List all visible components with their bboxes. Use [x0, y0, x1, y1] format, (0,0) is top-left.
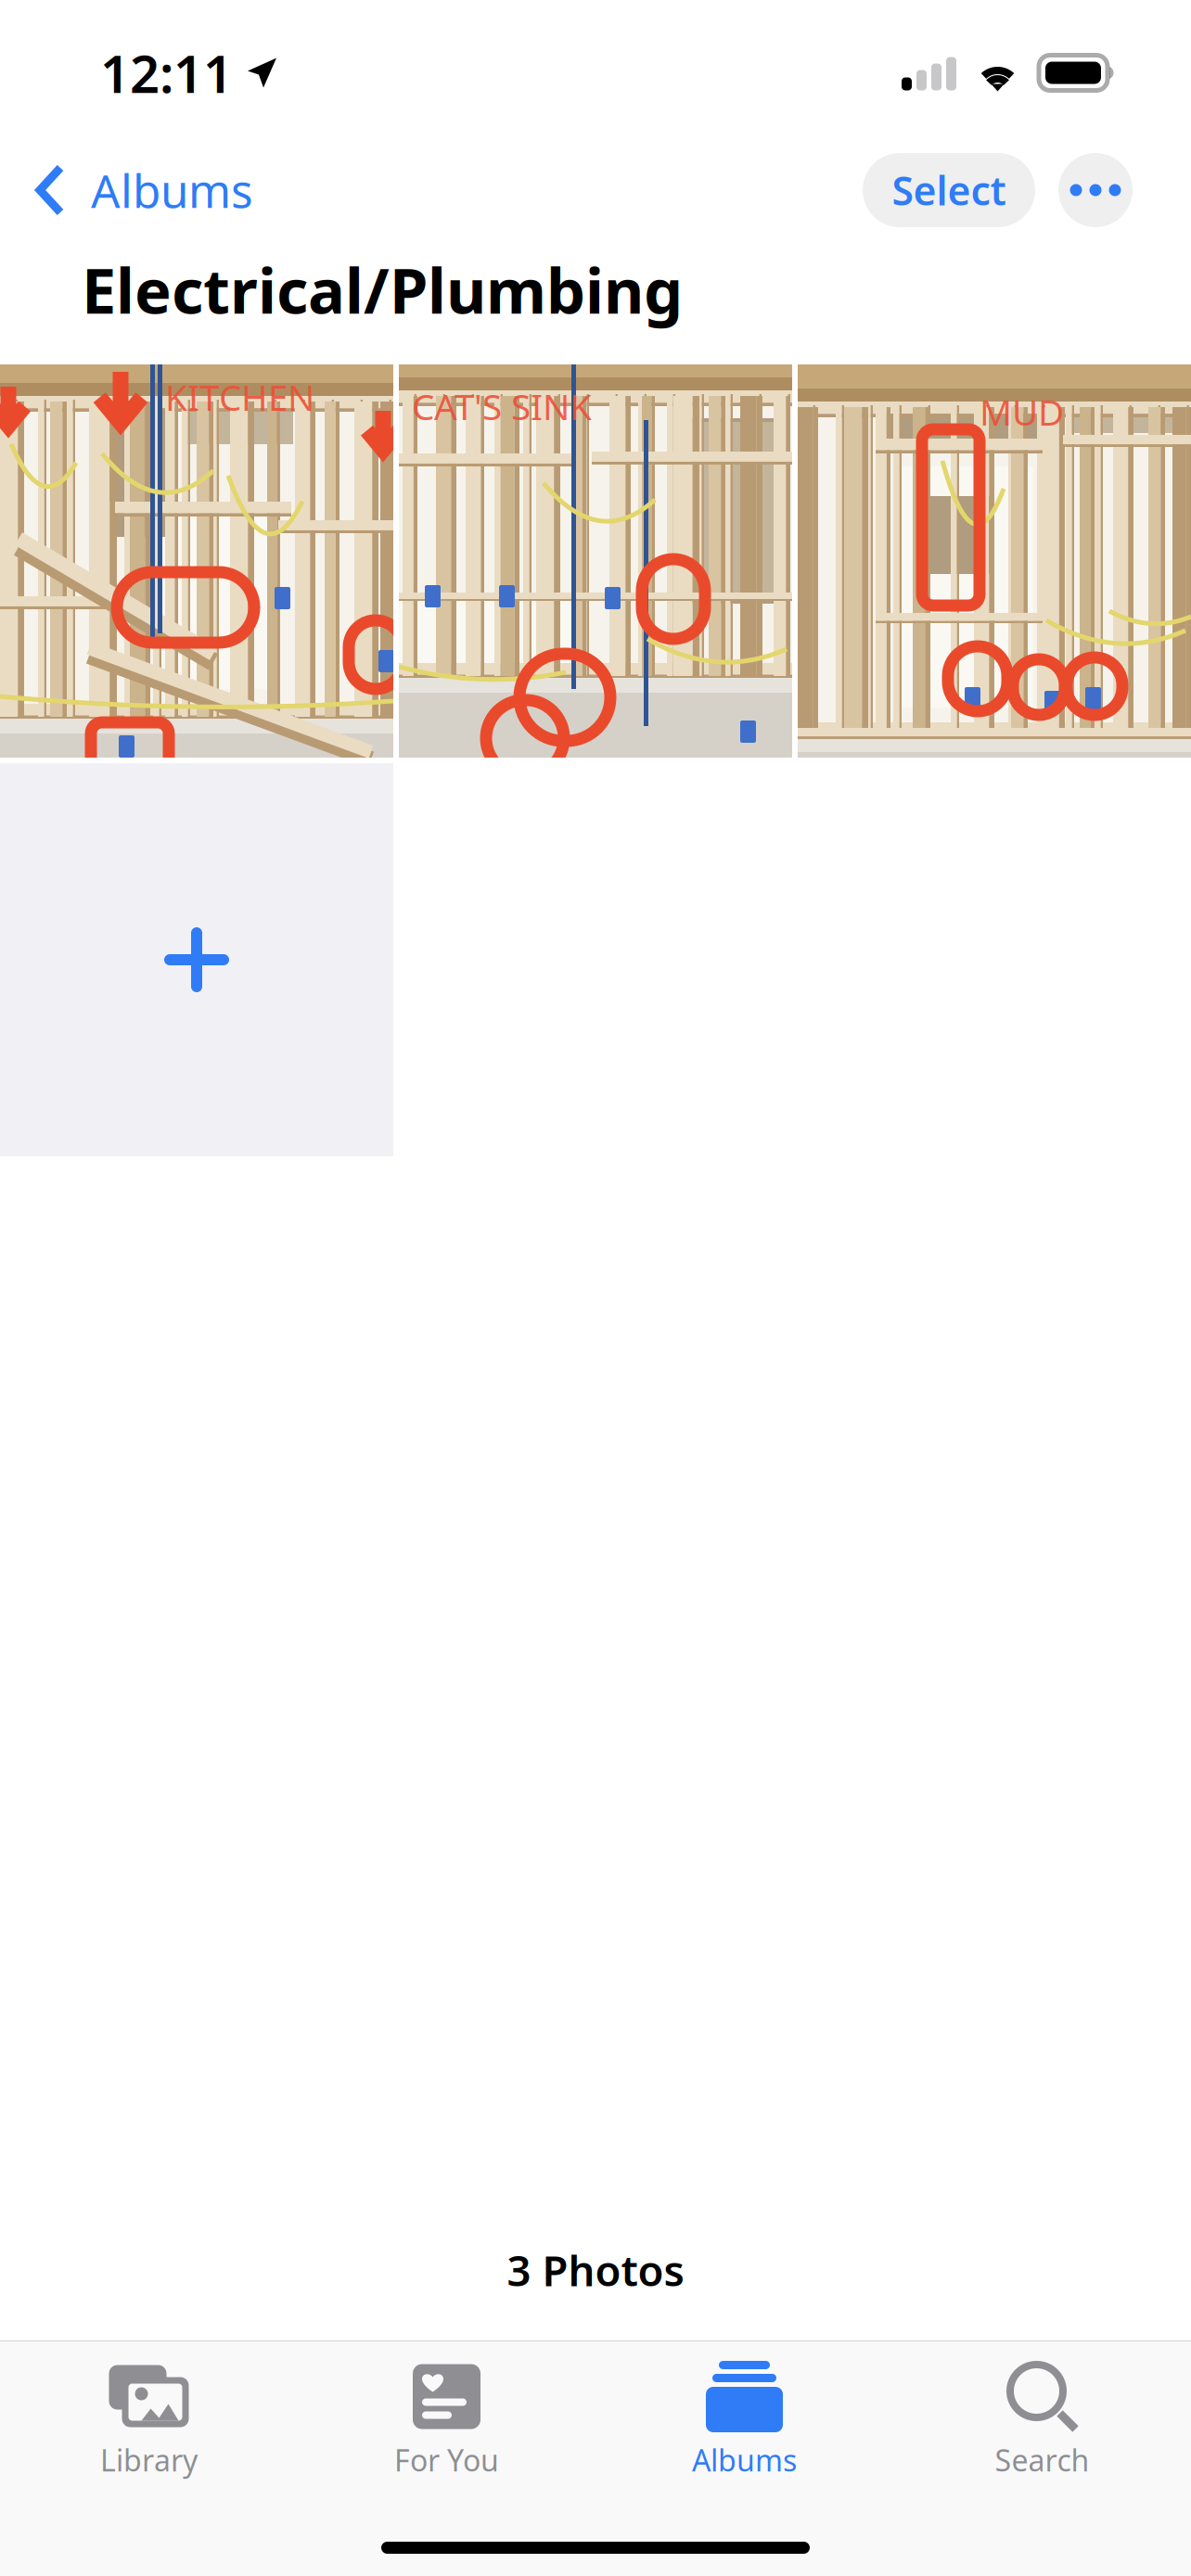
staticText: 12:11	[100, 38, 233, 107]
staticText: CAT'S SINK	[412, 382, 592, 430]
staticText: Search	[995, 2440, 1089, 2480]
button[interactable]: More options	[1058, 153, 1133, 227]
button[interactable]: For You	[298, 2331, 595, 2500]
button[interactable]: Albums	[595, 2331, 893, 2500]
staticText: MUD	[980, 388, 1064, 435]
button[interactable]: Select	[863, 153, 1035, 227]
button[interactable]: Add photos	[0, 763, 393, 1156]
staticText: Albums	[91, 160, 253, 220]
button[interactable]: Albums	[0, 147, 277, 233]
staticText: Albums	[692, 2440, 797, 2480]
staticText: For You	[394, 2440, 499, 2480]
staticText: Library	[100, 2440, 198, 2480]
button[interactable]: Library	[0, 2331, 298, 2500]
button[interactable]: Photo, Cat's Sink	[399, 364, 792, 758]
button[interactable]: Photo, Mud	[798, 364, 1191, 758]
staticText: Select	[892, 164, 1006, 216]
staticText: Electrical/Plumbing	[82, 249, 683, 331]
staticText: KITCHEN	[165, 373, 314, 421]
staticText: 3 Photos	[507, 2242, 684, 2298]
button[interactable]: Photo, Kitchen	[0, 364, 393, 758]
button[interactable]: Search	[893, 2331, 1191, 2500]
